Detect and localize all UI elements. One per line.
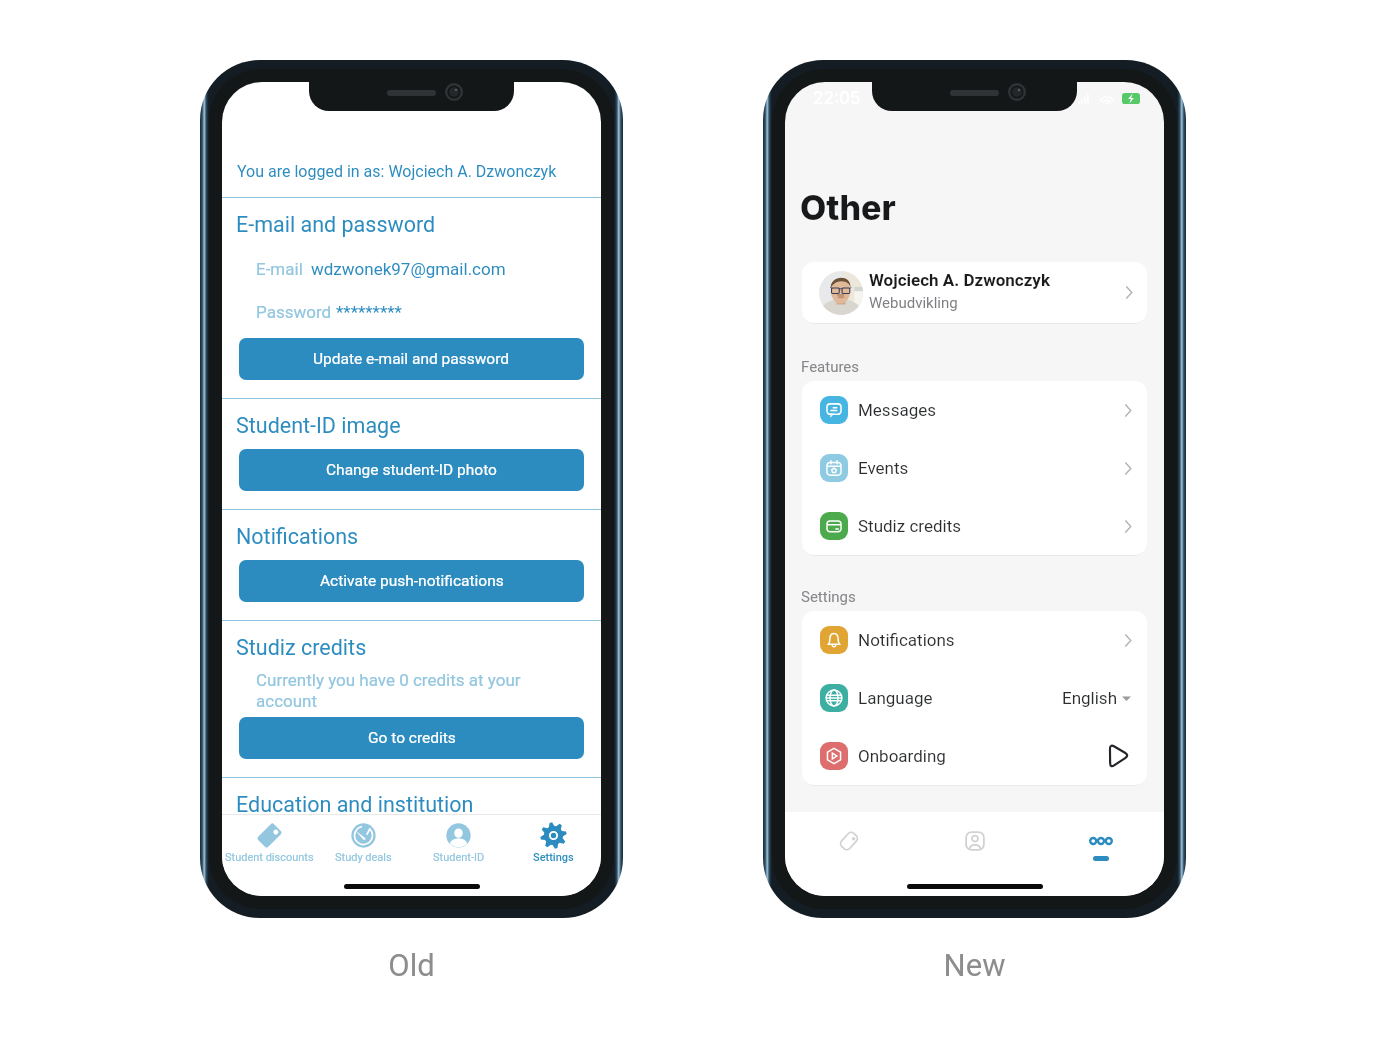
staticText: Currently you have 0 credits at your acc… xyxy=(256,670,536,712)
staticText: Old xyxy=(200,947,623,983)
staticText: wdzwonek97@gmail.com xyxy=(311,259,506,279)
button[interactable]: Other xyxy=(1038,812,1164,868)
staticText: 22:05 xyxy=(813,88,861,109)
staticText: Settings xyxy=(533,851,574,864)
staticText: Other xyxy=(800,187,896,228)
button[interactable]: Study deals xyxy=(316,814,411,872)
staticText: Onboarding xyxy=(858,746,946,766)
staticText: Webudvikling xyxy=(869,294,958,312)
staticText: Studiz credits xyxy=(236,635,367,660)
button[interactable]: Studiz credits xyxy=(802,497,1147,555)
button[interactable]: Messages xyxy=(802,381,1147,439)
staticText: Studiz credits xyxy=(858,516,961,536)
staticText: Activate push-notifications xyxy=(320,572,504,590)
staticText: E-mail and password xyxy=(236,212,436,237)
staticText: Features xyxy=(801,358,860,376)
button[interactable]: Events xyxy=(802,439,1147,497)
button[interactable]: Activate push-notifications xyxy=(239,560,584,602)
staticText: Change student-ID photo xyxy=(326,461,497,479)
staticText: New xyxy=(763,947,1186,983)
staticText: Update e-mail and password xyxy=(313,350,510,368)
button[interactable]: Student ID xyxy=(912,812,1038,868)
button[interactable]: Change student-ID photo xyxy=(239,449,584,491)
button[interactable]: Onboarding xyxy=(802,727,1147,785)
button[interactable]: Go to credits xyxy=(239,717,584,759)
staticText: Settings xyxy=(801,588,856,606)
staticText: Wojciech A. Dzwonczyk xyxy=(869,270,1050,290)
button[interactable]: Student-ID xyxy=(411,814,506,872)
staticText: Student-ID xyxy=(433,851,485,864)
button[interactable]: Update e-mail and password xyxy=(239,338,584,380)
button[interactable]: Settings xyxy=(506,814,601,872)
staticText: E-mail xyxy=(256,259,303,279)
button[interactable]: Language xyxy=(802,669,1147,727)
button[interactable]: Student discounts xyxy=(222,814,316,872)
button[interactable]: Notifications xyxy=(802,611,1147,669)
staticText: Student discounts xyxy=(225,851,314,864)
staticText: Go to credits xyxy=(368,729,456,747)
staticText: English xyxy=(1062,688,1118,708)
button[interactable]: Wojciech A. Dzwonczyk xyxy=(802,262,1147,323)
staticText: You are logged in as: Wojciech A. Dzwonc… xyxy=(237,162,557,181)
staticText: Language xyxy=(858,688,933,708)
staticText: Events xyxy=(858,458,909,478)
staticText: Password xyxy=(256,302,332,322)
staticText: Notifications xyxy=(236,524,359,549)
staticText: ********* xyxy=(336,302,402,322)
staticText: Study deals xyxy=(335,851,392,864)
staticText: Notifications xyxy=(858,630,955,650)
staticText: Education and institution xyxy=(236,792,474,817)
staticText: Messages xyxy=(858,400,936,420)
staticText: Student-ID image xyxy=(236,413,401,438)
button[interactable]: Student discounts xyxy=(785,812,912,868)
